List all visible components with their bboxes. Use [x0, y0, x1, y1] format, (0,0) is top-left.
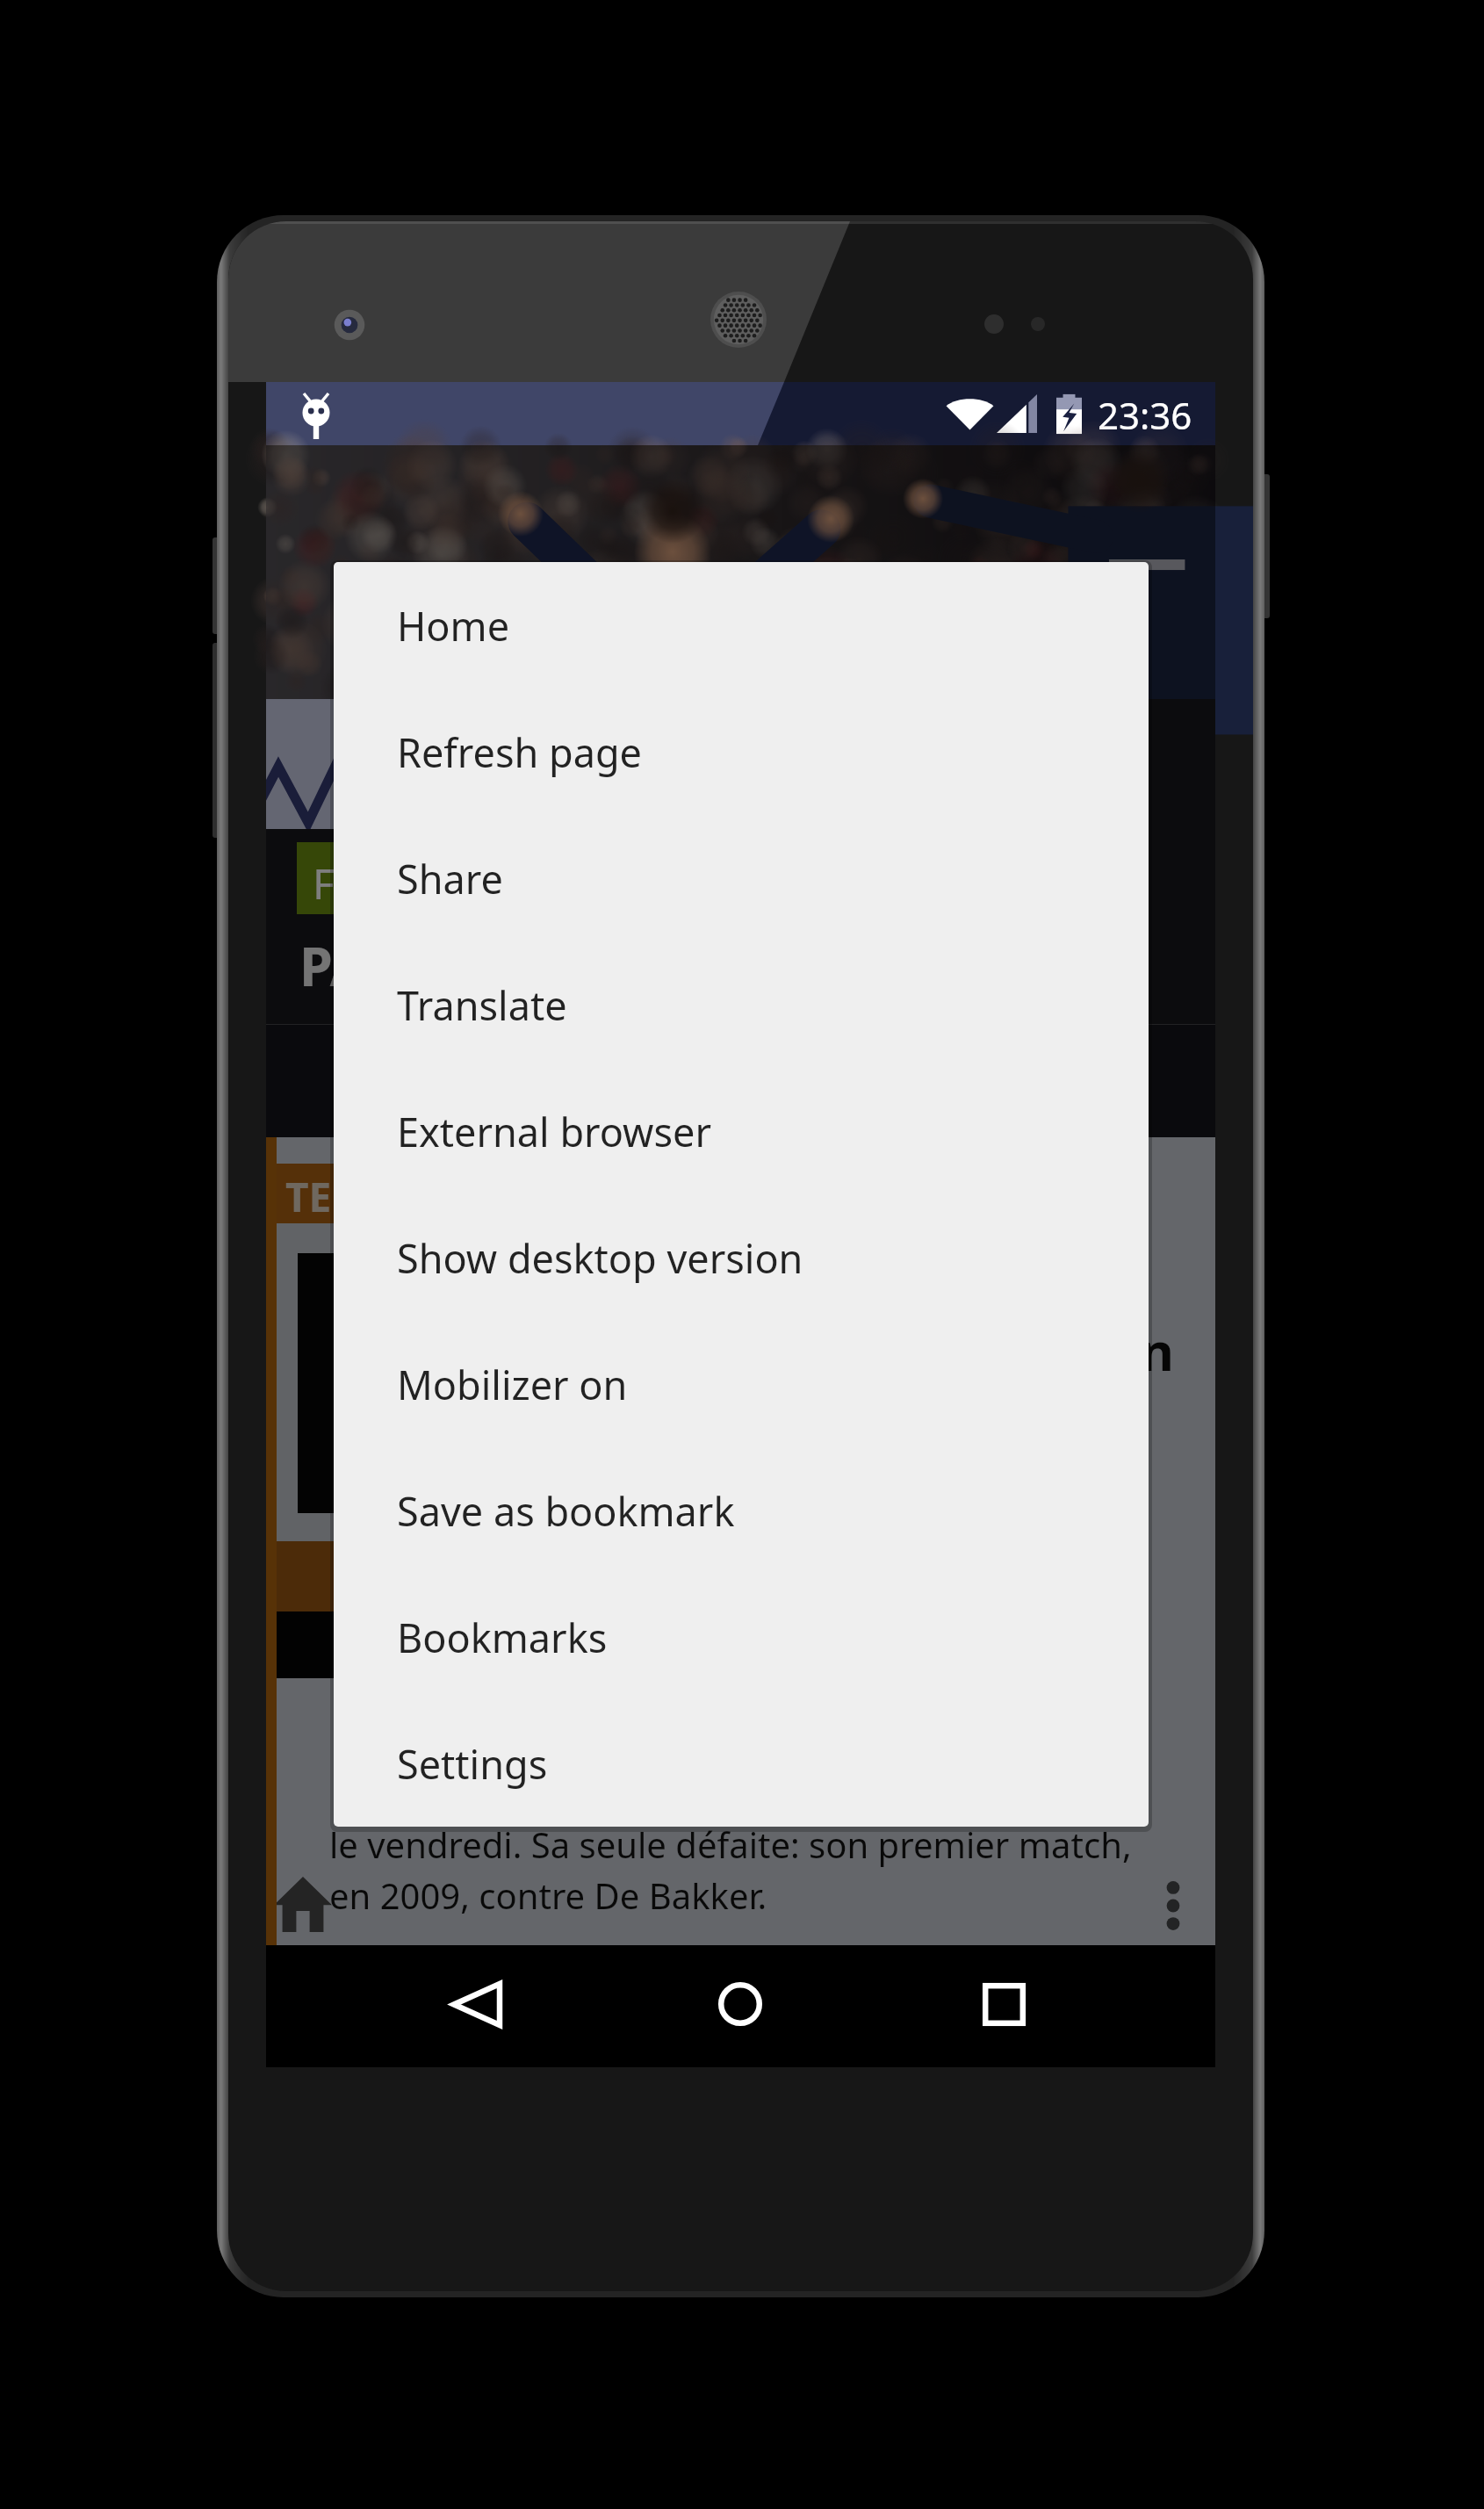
staticText: Refresh page — [397, 725, 642, 779]
button[interactable]: Share — [334, 815, 1149, 941]
staticText: Bookmarks — [397, 1611, 608, 1664]
button[interactable]: Home — [274, 1877, 332, 1932]
staticText: Save as bookmark — [397, 1484, 735, 1538]
button[interactable]: Translate — [334, 941, 1149, 1068]
staticText: Mobilizer on — [397, 1358, 628, 1411]
button[interactable]: Mobilizer on — [334, 1321, 1149, 1447]
button[interactable]: Home — [334, 562, 1149, 689]
button[interactable]: More options — [1162, 1881, 1185, 1930]
button[interactable]: Save as bookmark — [334, 1447, 1149, 1574]
staticText: Translate — [397, 978, 567, 1032]
button[interactable]: Recents — [951, 1951, 1056, 2057]
staticText: FOOT — [313, 854, 423, 912]
button[interactable]: Home — [688, 1951, 793, 2057]
staticText: TENNIS — [285, 1169, 436, 1224]
button[interactable]: Back — [424, 1951, 529, 2057]
staticText: Show desktop version — [397, 1231, 803, 1285]
button[interactable]: Bookmarks — [334, 1574, 1149, 1700]
staticText: Settings — [397, 1737, 548, 1791]
button[interactable]: Show desktop version — [334, 1194, 1149, 1321]
staticText: le vendredi. Sa seule défaite: son premi… — [329, 1820, 1132, 1868]
staticText: 23:36 — [1098, 390, 1192, 440]
button[interactable]: Refresh page — [334, 689, 1149, 815]
button[interactable]: Settings — [334, 1700, 1149, 1827]
staticText: Share — [397, 852, 503, 905]
staticText: PARIS SG - LE HAVRE — [299, 929, 830, 1002]
button[interactable]: External browser — [334, 1068, 1149, 1194]
staticText: Home — [397, 599, 510, 652]
staticText: Federer se qualifie en — [609, 1315, 1174, 1387]
staticText: en 2009, contre De Bakker. — [329, 1871, 767, 1919]
staticText: External browser — [397, 1105, 711, 1158]
button[interactable]: Dismiss menu — [266, 445, 1215, 1945]
